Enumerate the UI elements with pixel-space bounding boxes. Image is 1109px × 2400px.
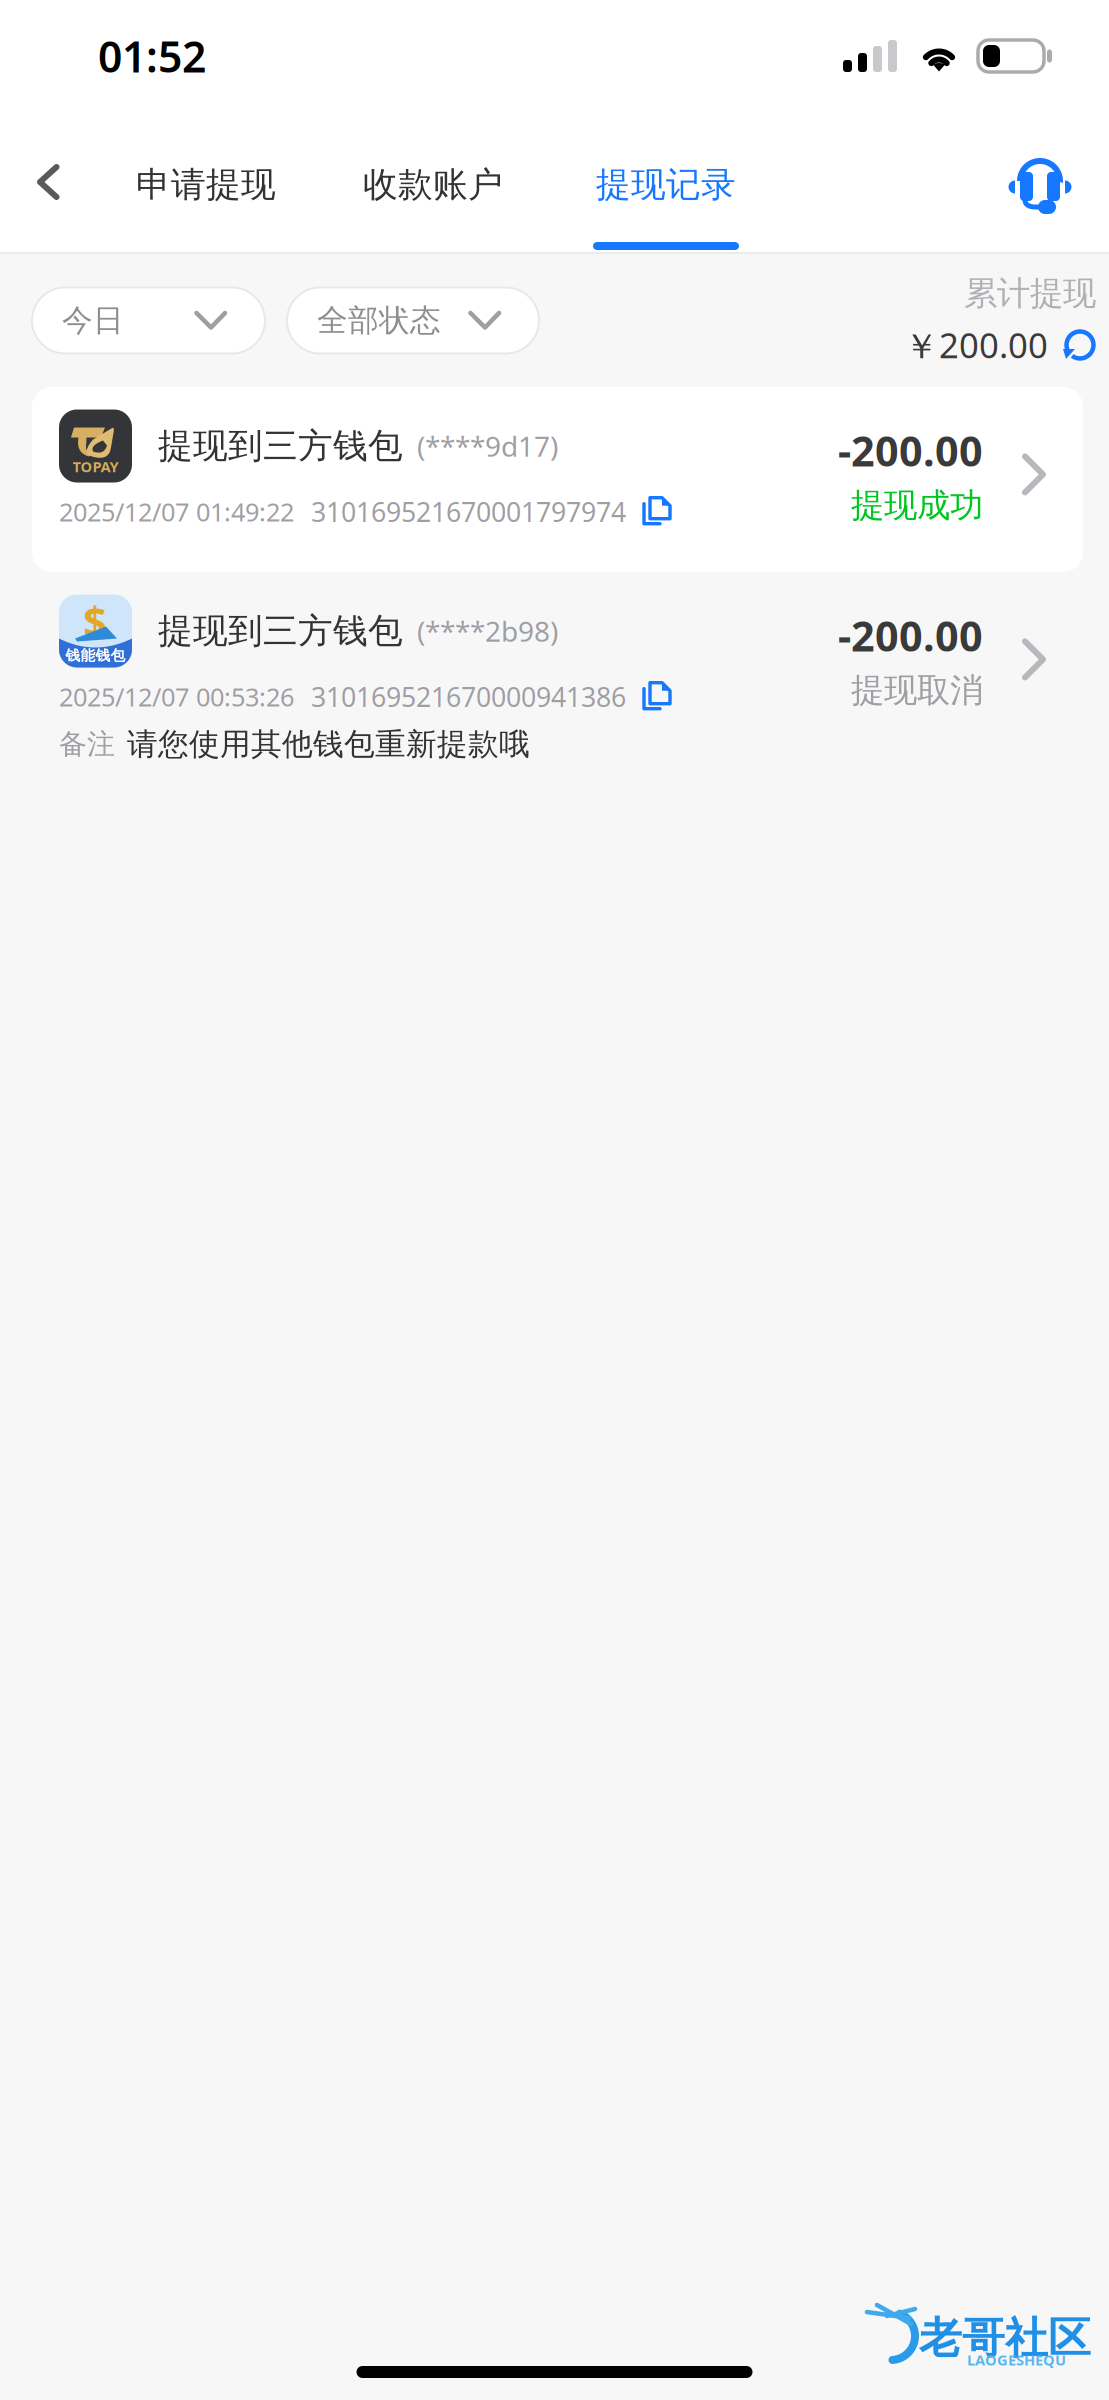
staticText: (****2b98) [417, 612, 558, 650]
staticText: LAOGESHEQU [967, 2350, 1066, 2369]
button[interactable]: 全部状态 [287, 287, 539, 353]
staticText: 提现记录 [596, 163, 736, 206]
staticText: 钱能钱包 [65, 646, 125, 664]
staticText: 2025/12/07 01:49:22 [59, 495, 294, 528]
staticText: ￥200.00 [904, 322, 1048, 368]
button[interactable]: $ [32, 572, 1083, 804]
button[interactable]: TOPAY [32, 387, 1083, 572]
staticText: (****9d17) [417, 427, 558, 465]
staticText: 备注 [59, 727, 115, 761]
staticText: 今日 [62, 302, 124, 339]
staticText: 全部状态 [317, 302, 441, 339]
button[interactable]: 申请提现 [106, 112, 306, 252]
button[interactable]: Refresh [1062, 328, 1096, 362]
button[interactable]: Customer service [985, 112, 1095, 252]
staticText: 提现到三方钱包 [158, 610, 403, 652]
staticText: 收款账户 [363, 163, 503, 206]
staticText: 申请提现 [136, 163, 276, 206]
staticText: -200.00 [838, 608, 983, 663]
staticText: 提现取消 [851, 670, 983, 711]
button[interactable]: 提现记录 [566, 112, 766, 252]
staticText: 提现到三方钱包 [158, 425, 403, 467]
staticText: TOPAY [72, 457, 118, 476]
staticText: 310169521670000941386 [311, 679, 626, 714]
button[interactable]: Back [13, 112, 83, 252]
staticText: 老哥社区 [919, 2312, 1091, 2364]
staticText: -200.00 [838, 423, 983, 478]
staticText: 01:52 [98, 28, 206, 84]
button[interactable]: 今日 [32, 287, 265, 353]
staticText: 提现成功 [851, 485, 983, 526]
staticText: 2025/12/07 00:53:26 [59, 680, 294, 713]
button[interactable]: 收款账户 [333, 112, 533, 252]
staticText: 请您使用其他钱包重新提款哦 [127, 725, 530, 763]
staticText: $ [83, 593, 107, 648]
staticText: 累计提现 [964, 273, 1096, 314]
staticText: 310169521670001797974 [311, 494, 626, 529]
